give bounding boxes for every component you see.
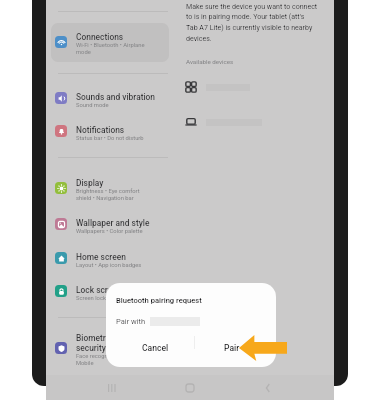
button[interactable]: Wallpaper and style xyxy=(51,208,169,238)
staticText: Sounds and vibration xyxy=(76,92,156,102)
other: Pair pointer xyxy=(239,335,287,361)
button[interactable] xyxy=(185,111,325,133)
button[interactable]: Lock screen xyxy=(51,275,169,305)
button[interactable]: Home screen xyxy=(51,242,169,272)
staticText: Brightness • Eye comfort shield • Naviga… xyxy=(76,188,156,202)
staticText: Pair xyxy=(224,343,240,353)
button[interactable]: Recents xyxy=(100,376,124,400)
staticText: Screen lock type xyxy=(76,295,119,302)
staticText: Bluetooth pairing request xyxy=(116,296,202,305)
staticText: Home screen xyxy=(76,252,126,262)
staticText: Sound mode xyxy=(76,102,109,109)
button[interactable]: Connections xyxy=(51,22,169,60)
staticText: Status bar • Do not disturb xyxy=(76,135,144,142)
button[interactable]: Display xyxy=(51,168,169,206)
staticText: Face recognition • Mobile xyxy=(76,353,123,367)
staticText: Biometrics and security xyxy=(76,333,156,353)
staticText: Layout • App icon badges xyxy=(76,262,142,269)
staticText: Available devices xyxy=(186,58,234,65)
staticText: Connections xyxy=(76,32,124,42)
button[interactable]: Cancel xyxy=(110,335,194,361)
staticText: Display xyxy=(76,178,104,188)
staticText: Wallpaper and style xyxy=(76,218,150,228)
staticText: Make sure the device you want to connect… xyxy=(186,2,318,43)
staticText: Pair with xyxy=(116,317,146,326)
staticText: Notifications xyxy=(76,125,125,135)
staticText: Lock screen xyxy=(76,285,122,295)
staticText: Cancel xyxy=(142,343,169,353)
button[interactable]: Home xyxy=(178,376,202,400)
button[interactable] xyxy=(185,76,325,98)
staticText: Wi-Fi • Bluetooth • Airplane mode xyxy=(76,42,156,56)
button[interactable]: Sounds and vibration xyxy=(51,82,169,112)
button[interactable]: Pair xyxy=(195,335,276,361)
staticText: Wallpapers • Color palette xyxy=(76,228,143,235)
button[interactable]: Biometrics and security xyxy=(51,326,169,368)
button[interactable]: Notifications xyxy=(51,115,169,145)
